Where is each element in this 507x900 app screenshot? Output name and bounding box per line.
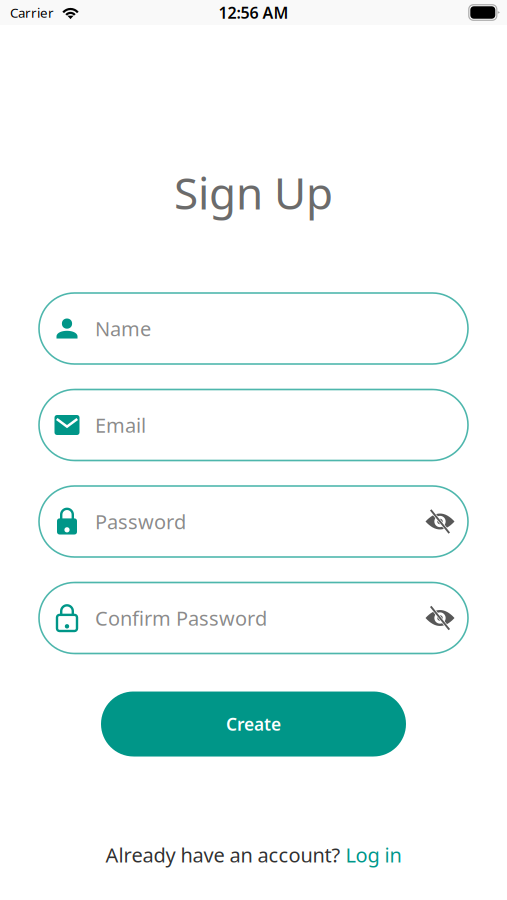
staticText: 12:56 AM [218,2,288,23]
button[interactable]: Password [0,486,507,557]
button[interactable]: Email [0,389,507,460]
staticText: Name [95,315,151,342]
button[interactable]: Create [101,691,406,756]
button[interactable]: Log in [345,841,401,868]
staticText: Log in [345,841,401,868]
staticText: Carrier [10,4,54,21]
staticText: Create [226,712,281,735]
staticText: Already have an account? [105,841,345,868]
staticText: Sign Up [174,163,333,222]
staticText: Password [95,508,186,535]
staticText: Email [95,412,146,438]
staticText: Confirm Password [95,605,267,631]
button[interactable]: Name [0,293,507,364]
button[interactable]: Confirm Password [0,582,507,653]
